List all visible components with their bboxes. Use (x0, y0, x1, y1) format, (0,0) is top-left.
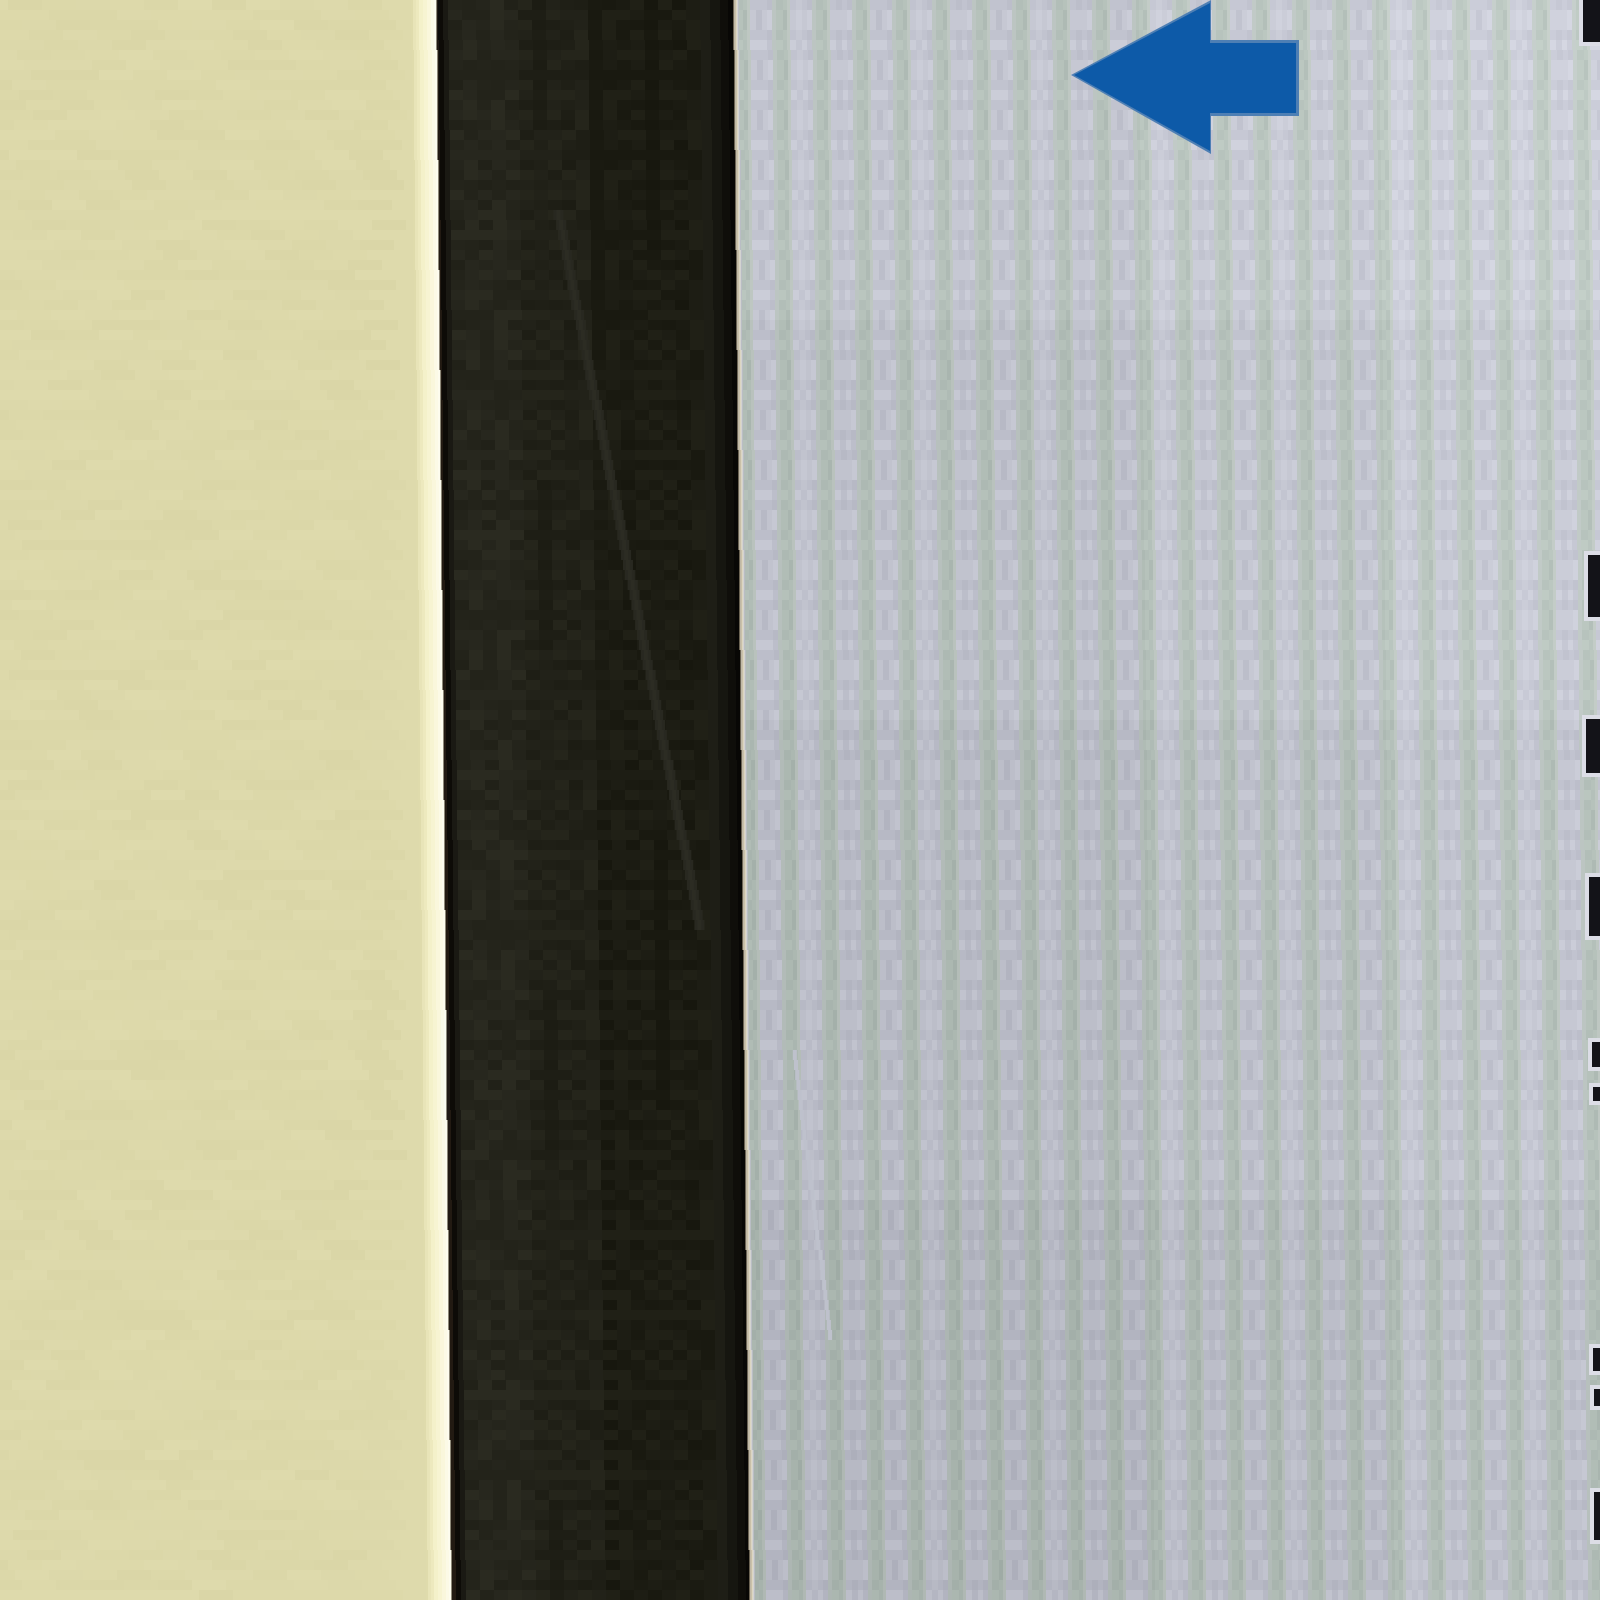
button[interactable]: Back (1074, 3, 1296, 155)
